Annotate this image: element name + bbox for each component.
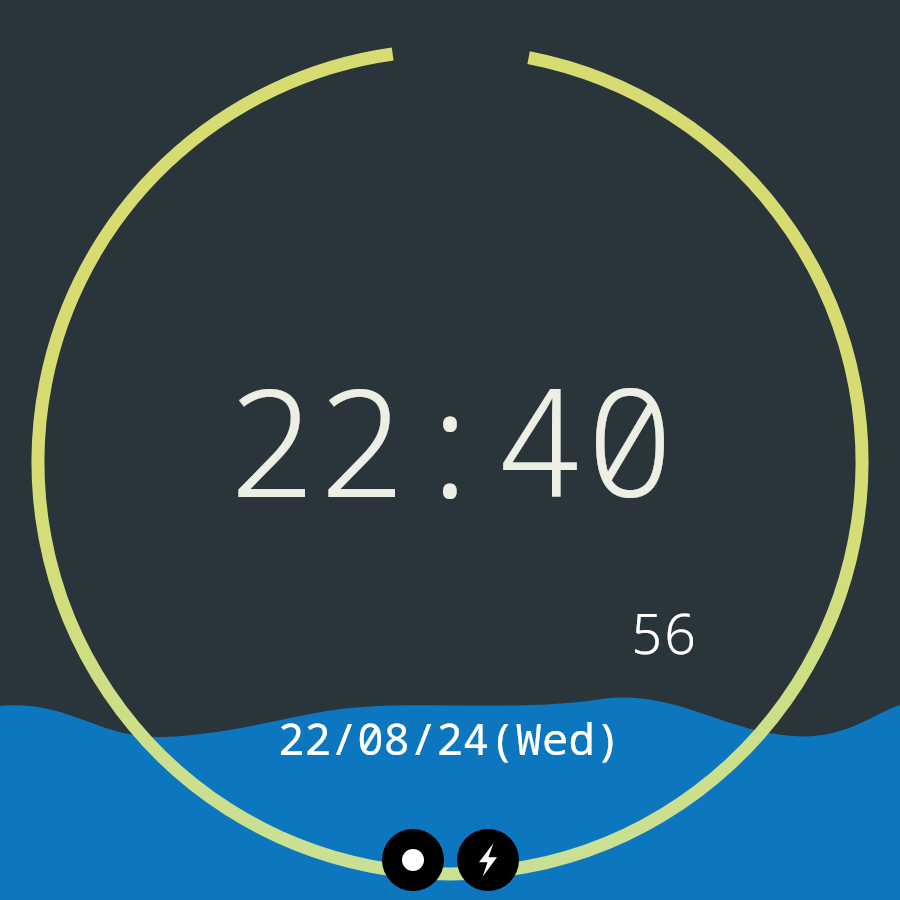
button[interactable]: Battery complication bbox=[457, 829, 519, 891]
staticText: 22/08/24(Wed) bbox=[278, 708, 622, 768]
staticText: 56 bbox=[630, 594, 698, 670]
staticText: 22:40 bbox=[225, 337, 676, 541]
button[interactable]: Step counter complication bbox=[382, 829, 444, 891]
